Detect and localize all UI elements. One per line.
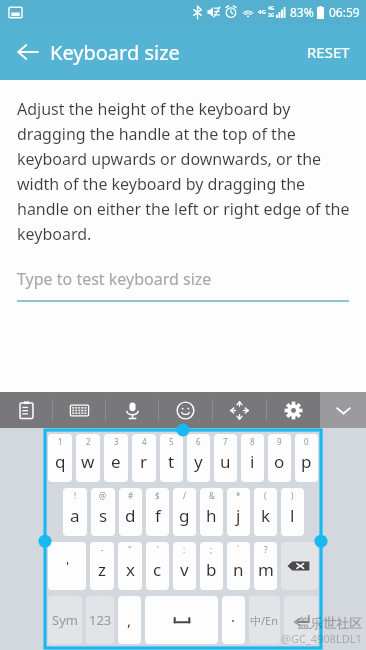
staticText: ': [157, 544, 159, 555]
staticText: l: [290, 504, 295, 527]
button[interactable]: !: [63, 488, 87, 536]
button[interactable]: (: [254, 488, 277, 536]
staticText: v: [180, 558, 189, 581]
staticText: !: [74, 490, 77, 501]
staticText: 8: [250, 436, 255, 447]
staticText: 4: [142, 436, 147, 447]
staticText: j: [236, 504, 241, 527]
button[interactable]: 123: [86, 596, 114, 644]
staticText: Adjust the height of the keyboard by dra…: [17, 98, 350, 244]
button[interactable]: ): [281, 488, 304, 536]
staticText: $: [155, 490, 160, 501]
staticText: @GC_4908LDL1: [281, 631, 362, 646]
button[interactable]: #: [119, 488, 142, 536]
button[interactable]: $: [146, 488, 169, 536]
staticText: @: [99, 490, 107, 501]
button[interactable]: 1: [48, 434, 72, 482]
staticText: ·: [231, 610, 236, 630]
staticText: x: [126, 558, 135, 581]
staticText: m: [258, 558, 274, 581]
button[interactable]: 8: [241, 434, 264, 482]
button[interactable]: &: [200, 488, 223, 536]
staticText: b: [206, 558, 217, 581]
staticText: i: [250, 450, 255, 473]
button[interactable]: *: [227, 488, 250, 536]
staticText: 06:59: [329, 4, 360, 20]
staticText: w: [81, 450, 95, 473]
staticText: 2G: [268, 12, 275, 19]
staticText: a: [70, 504, 80, 527]
button[interactable]: Keyboard: [53, 392, 105, 428]
staticText: 5: [169, 436, 174, 447]
staticText: ': [66, 557, 69, 575]
button[interactable]: :: [173, 542, 196, 590]
button[interactable]: `: [227, 542, 250, 590]
button[interactable]: Clipboard: [0, 392, 52, 428]
button[interactable]: Enter: [284, 596, 318, 644]
staticText: d: [125, 504, 136, 527]
button[interactable]: Voice input: [106, 392, 158, 428]
staticText: Sym: [52, 611, 78, 629]
staticText: f: [155, 504, 161, 527]
button[interactable]: Emoji: [159, 392, 212, 428]
button[interactable]: Space: [145, 596, 218, 644]
staticText: *: [236, 490, 241, 501]
button[interactable]: Hide keyboard: [320, 392, 366, 428]
staticText: 中/En: [250, 613, 279, 628]
staticText: `: [237, 544, 240, 555]
staticText: 3: [114, 436, 119, 447]
button[interactable]: 5: [160, 434, 183, 482]
button[interactable]: Settings: [267, 392, 320, 428]
button[interactable]: 9: [268, 434, 291, 482]
staticText: 7: [223, 436, 228, 447]
staticText: (: [264, 490, 267, 501]
staticText: -: [101, 544, 104, 555]
staticText: g: [179, 504, 190, 527]
staticText: k: [261, 504, 271, 527]
staticText: 盖乐世社区: [297, 615, 362, 631]
staticText: r: [140, 450, 148, 473]
staticText: 0: [304, 436, 309, 447]
staticText: z: [98, 558, 106, 581]
staticText: #: [128, 490, 134, 501]
staticText: 2: [86, 436, 91, 447]
button[interactable]: 中/En: [249, 596, 280, 644]
staticText: n: [233, 558, 244, 581]
button[interactable]: Type to test keyboard size: [17, 268, 349, 302]
staticText: 6: [196, 436, 201, 447]
staticText: e: [111, 450, 121, 473]
button[interactable]: /: [173, 488, 196, 536]
button[interactable]: ': [146, 542, 169, 590]
staticText: RESET: [307, 42, 350, 62]
button[interactable]: @: [91, 488, 115, 536]
staticText: h: [206, 504, 217, 527]
staticText: ;: [210, 544, 213, 555]
button[interactable]: Back: [6, 30, 50, 74]
button[interactable]: -: [90, 542, 114, 590]
button[interactable]: ": [118, 542, 142, 590]
button[interactable]: ;: [200, 542, 223, 590]
button[interactable]: Move keyboard: [213, 392, 266, 428]
button[interactable]: Sym: [48, 596, 82, 644]
staticText: y: [194, 450, 203, 473]
staticText: ,: [127, 610, 132, 630]
button[interactable]: ·: [222, 596, 245, 644]
button[interactable]: ': [48, 542, 86, 590]
staticText: :: [183, 544, 186, 555]
staticText: 4G: [268, 5, 275, 12]
button[interactable]: 7: [214, 434, 237, 482]
button[interactable]: ?: [254, 542, 277, 590]
staticText: Keyboard size: [50, 39, 180, 66]
button[interactable]: RESET: [295, 32, 362, 72]
button[interactable]: Backspace: [281, 542, 318, 590]
button[interactable]: 3: [104, 434, 128, 482]
staticText: t: [168, 450, 175, 473]
button[interactable]: 6: [187, 434, 210, 482]
button[interactable]: 4: [132, 434, 156, 482]
staticText: 83%: [290, 4, 314, 20]
button[interactable]: 0: [295, 434, 318, 482]
button[interactable]: 2: [76, 434, 100, 482]
staticText: u: [220, 450, 231, 473]
button[interactable]: ,: [118, 596, 141, 644]
staticText: /: [183, 490, 186, 501]
